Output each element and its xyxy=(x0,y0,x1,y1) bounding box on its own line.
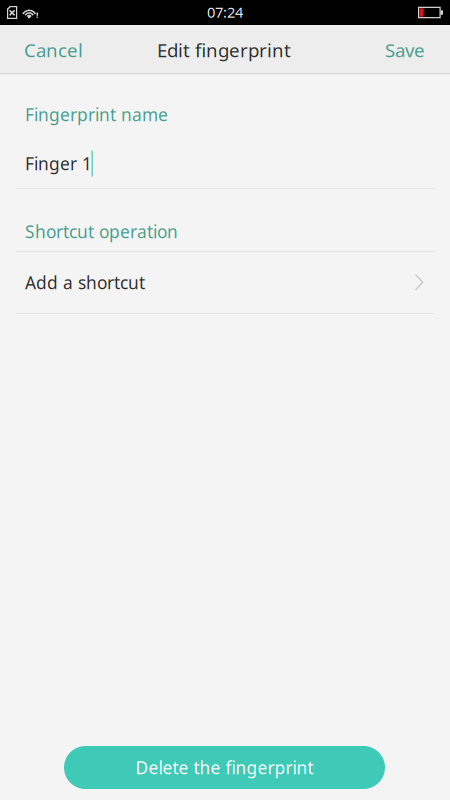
staticText: Cancel xyxy=(24,38,83,62)
button[interactable]: Cancel xyxy=(0,25,101,75)
staticText: Delete the fingerprint xyxy=(135,756,313,779)
staticText: Fingerprint name xyxy=(25,103,168,126)
staticText: Add a shortcut xyxy=(25,271,145,294)
staticText: Finger 1 xyxy=(25,152,92,175)
button[interactable]: Delete the fingerprint xyxy=(64,746,385,789)
staticText: Edit fingerprint xyxy=(157,38,291,62)
button[interactable]: Finger 1 xyxy=(0,126,450,188)
staticText: 07:24 xyxy=(207,2,243,22)
button[interactable]: Add a shortcut xyxy=(0,252,450,313)
button[interactable]: Save xyxy=(367,25,450,75)
staticText: Save xyxy=(385,38,425,62)
staticText: Shortcut operation xyxy=(25,220,178,243)
